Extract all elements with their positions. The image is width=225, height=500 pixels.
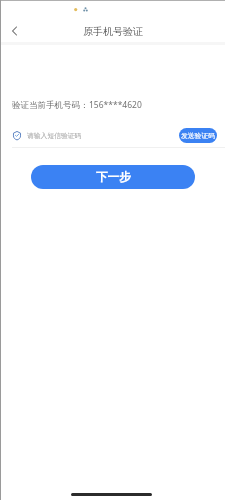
- staticText: 请输入短信验证码: [27, 131, 82, 140]
- staticText: 原手机号验证: [83, 25, 143, 38]
- staticText: 156****4620: [89, 99, 142, 111]
- button[interactable]: 下一步: [31, 165, 195, 189]
- staticText: 下一步: [96, 170, 131, 184]
- button[interactable]: 发送验证码: [179, 128, 217, 143]
- staticText: 验证当前手机号码：: [12, 100, 89, 111]
- staticText: 发送验证码: [181, 131, 215, 140]
- button[interactable]: Back: [0, 19, 28, 43]
